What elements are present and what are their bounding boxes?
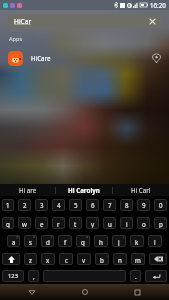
- button[interactable]: [43, 270, 126, 282]
- staticText: ;: [107, 253, 108, 257]
- button[interactable]: #: [24, 235, 37, 247]
- staticText: +: [123, 235, 125, 239]
- staticText: Apps: [9, 35, 23, 43]
- staticText: p: [159, 220, 163, 228]
- staticText: k: [135, 238, 139, 246]
- button[interactable]: 0: [154, 199, 167, 211]
- button[interactable]: Home: [65, 284, 105, 300]
- button[interactable]: 7: [103, 199, 116, 211]
- button[interactable]: 4: [52, 199, 65, 211]
- button[interactable]: :: [77, 253, 91, 265]
- staticText: d: [46, 238, 50, 246]
- staticText: t: [74, 220, 77, 228]
- staticText: [: [79, 217, 81, 221]
- staticText: f: [64, 238, 67, 246]
- staticText: ': [71, 253, 72, 257]
- button[interactable]: ,: [28, 270, 39, 282]
- staticText: .: [135, 272, 137, 280]
- button[interactable]: *: [24, 253, 37, 265]
- button[interactable]: (: [130, 235, 144, 247]
- button[interactable]: <: [103, 217, 116, 229]
- button[interactable]: [: [69, 217, 82, 229]
- staticText: -: [105, 235, 107, 239]
- staticText: v: [82, 256, 86, 264]
- staticText: h: [99, 238, 103, 246]
- button[interactable]: %: [2, 217, 14, 229]
- button[interactable]: ;: [95, 253, 109, 265]
- staticText: m: [135, 256, 141, 264]
- button[interactable]: ]: [86, 217, 99, 229]
- button[interactable]: >: [120, 217, 133, 229]
- button[interactable]: !: [113, 253, 127, 265]
- staticText: Hi are: [19, 186, 37, 194]
- staticText: ]: [96, 217, 98, 221]
- button[interactable]: }: [154, 217, 167, 229]
- staticText: g: [81, 238, 85, 246]
- button[interactable]: Enter: [145, 270, 167, 282]
- button[interactable]: 3: [35, 199, 48, 211]
- staticText: >: [130, 217, 132, 221]
- button[interactable]: _: [58, 235, 72, 247]
- button[interactable]: Hi Carl: [113, 184, 169, 196]
- staticText: Hi Carl: [131, 186, 151, 194]
- button[interactable]: |: [35, 217, 48, 229]
- button[interactable]: HiCare: [0, 46, 169, 70]
- button[interactable]: \: [18, 217, 31, 229]
- button[interactable]: 9: [137, 199, 150, 211]
- button[interactable]: ): [148, 235, 162, 247]
- button[interactable]: Recents: [117, 284, 157, 300]
- staticText: q: [6, 220, 10, 228]
- staticText: #: [33, 235, 36, 239]
- button[interactable]: &: [76, 235, 90, 247]
- button[interactable]: @: [7, 235, 20, 247]
- button[interactable]: Hi Carolyn: [56, 184, 112, 196]
- button[interactable]: Shift: [2, 253, 20, 265]
- button[interactable]: $: [41, 235, 54, 247]
- button[interactable]: Hi are: [0, 184, 55, 196]
- staticText: }: [164, 217, 166, 221]
- staticText: 4: [57, 201, 61, 209]
- button[interactable]: 5: [69, 199, 82, 211]
- button[interactable]: -: [94, 235, 108, 247]
- staticText: :: [89, 253, 90, 257]
- button[interactable]: ': [59, 253, 73, 265]
- staticText: ?: [142, 253, 144, 257]
- button[interactable]: HiCar: [8, 14, 161, 28]
- staticText: 8: [125, 201, 129, 209]
- button[interactable]: {: [137, 217, 150, 229]
- staticText: e: [40, 220, 44, 228]
- button[interactable]: .: [130, 270, 141, 282]
- staticText: ": [52, 253, 54, 257]
- staticText: w: [22, 220, 27, 228]
- button[interactable]: Back: [12, 284, 52, 300]
- staticText: b: [100, 256, 104, 264]
- staticText: c: [65, 256, 68, 264]
- button[interactable]: 123: [2, 270, 24, 282]
- button[interactable]: Backspace: [149, 253, 167, 265]
- button[interactable]: Location: [146, 48, 166, 68]
- staticText: %: [10, 217, 13, 221]
- staticText: \: [28, 217, 30, 221]
- staticText: j: [118, 238, 120, 246]
- button[interactable]: +: [112, 235, 126, 247]
- staticText: 7: [108, 201, 112, 209]
- staticText: ): [160, 235, 161, 239]
- staticText: u: [108, 220, 112, 228]
- button[interactable]: ": [41, 253, 55, 265]
- button[interactable]: ?: [131, 253, 145, 265]
- staticText: 2: [23, 201, 27, 209]
- staticText: y: [91, 220, 95, 228]
- button[interactable]: =: [52, 217, 65, 229]
- staticText: <: [113, 217, 115, 221]
- button[interactable]: 2: [18, 199, 31, 211]
- staticText: s: [29, 238, 32, 246]
- staticText: 1: [6, 201, 10, 209]
- staticText: !: [125, 253, 126, 257]
- button[interactable]: 8: [120, 199, 133, 211]
- button[interactable]: Clear: [145, 14, 159, 28]
- button[interactable]: 1: [2, 199, 14, 211]
- button[interactable]: 6: [86, 199, 99, 211]
- staticText: o: [142, 220, 146, 228]
- staticText: _: [69, 235, 71, 239]
- staticText: =: [62, 217, 64, 221]
